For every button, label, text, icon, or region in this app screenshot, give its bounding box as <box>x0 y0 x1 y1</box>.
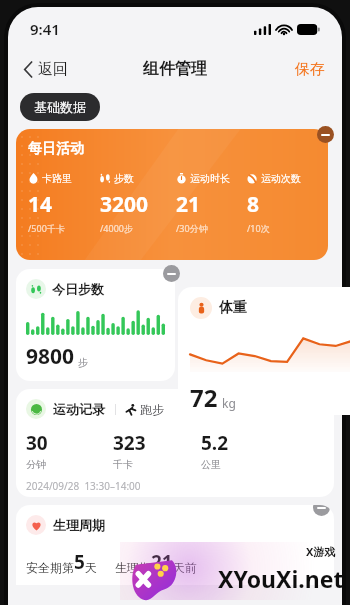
button[interactable]: 保存 <box>292 56 328 83</box>
staticText: 运动次数 <box>261 172 301 185</box>
staticText: 5 <box>74 549 85 575</box>
staticText: 公里 <box>201 458 221 471</box>
staticText: /500千卡 <box>28 222 65 234</box>
staticText: kg <box>222 395 236 411</box>
staticText: 21 <box>176 190 201 219</box>
staticText: 2024/09/28 13:30–14:00 <box>26 479 141 493</box>
staticText: 生理周期 <box>53 517 105 533</box>
staticText: 跑步 <box>140 402 164 417</box>
staticText: 天 <box>85 560 97 575</box>
staticText: 天前 <box>173 560 197 575</box>
button[interactable]: 生理周期 <box>16 505 334 585</box>
button[interactable]: 每日活动 <box>16 129 328 260</box>
staticText: 5.2 <box>201 430 229 456</box>
button[interactable]: 移除组件 <box>313 505 330 516</box>
staticText: 9800 <box>26 342 75 371</box>
button[interactable]: 今日步数 <box>16 269 175 381</box>
button[interactable]: 移除组件 <box>163 265 180 282</box>
staticText: 3200 <box>100 190 149 219</box>
staticText: 72 <box>190 381 218 414</box>
staticText: 体重 <box>219 299 247 317</box>
staticText: 每日活动 <box>28 140 84 158</box>
staticText: /10次 <box>247 222 270 234</box>
staticText: 14 <box>28 190 53 219</box>
staticText: XYouXi.net <box>218 563 344 594</box>
staticText: 组件管理 <box>143 59 207 79</box>
staticText: 基础数据 <box>34 99 86 115</box>
staticText: 分钟 <box>26 458 46 471</box>
staticText: /4000步 <box>100 222 133 234</box>
staticText: 30 <box>26 430 48 456</box>
button[interactable]: 返回 <box>22 56 70 83</box>
staticText: 21 <box>151 549 173 575</box>
staticText: 今日步数 <box>52 281 104 297</box>
staticText: 保存 <box>295 60 325 79</box>
staticText: 运动记录 <box>53 401 105 417</box>
staticText: 8 <box>247 190 260 219</box>
staticText: 步数 <box>114 172 134 185</box>
staticText: X游戏 <box>306 544 336 559</box>
staticText: 卡路里 <box>42 172 72 185</box>
staticText: 323 <box>113 430 146 456</box>
staticText: 安全期第 <box>26 560 74 575</box>
staticText: 千卡 <box>113 458 133 471</box>
button[interactable]: 移除组件 <box>317 126 334 143</box>
staticText: 运动时长 <box>190 172 230 185</box>
staticText: 9:41 <box>30 19 60 39</box>
button[interactable]: 基础数据 <box>20 93 100 121</box>
button[interactable]: 体重 <box>178 287 350 415</box>
staticText: 返回 <box>38 60 68 79</box>
staticText: /30分钟 <box>176 222 208 234</box>
button[interactable]: 运动记录 <box>16 389 334 497</box>
staticText: 步 <box>78 356 88 369</box>
staticText: 生理期 <box>115 560 151 575</box>
